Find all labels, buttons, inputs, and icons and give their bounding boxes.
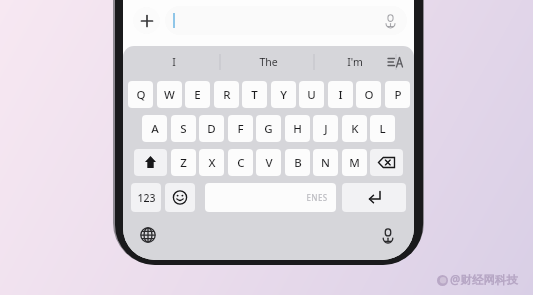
button[interactable]: Shift — [134, 149, 167, 176]
staticText: W — [164, 87, 175, 103]
staticText: A — [151, 121, 159, 137]
staticText: G — [264, 121, 273, 137]
button[interactable]: O — [356, 81, 381, 108]
staticText: H — [293, 121, 302, 137]
button[interactable]: Change keyboard language — [137, 224, 159, 246]
staticText: ENES — [306, 192, 328, 203]
button[interactable]: H — [285, 115, 310, 142]
staticText: U — [307, 87, 316, 103]
button[interactable]: C — [228, 149, 253, 176]
button[interactable]: 123 — [131, 183, 161, 212]
button[interactable]: Space — [205, 183, 336, 212]
staticText: D — [207, 121, 216, 137]
staticText: Y — [280, 87, 287, 103]
button[interactable]: E — [185, 81, 210, 108]
button[interactable]: Text formatting — [378, 51, 412, 73]
button[interactable]: I — [127, 51, 221, 73]
button[interactable]: S — [171, 115, 196, 142]
button[interactable]: X — [199, 149, 224, 176]
staticText: T — [251, 87, 258, 103]
button[interactable]: F — [228, 115, 253, 142]
button[interactable]: Enter — [342, 183, 406, 212]
staticText: R — [223, 87, 231, 103]
staticText: @财经网科技 — [450, 272, 518, 288]
button[interactable]: Emoji — [165, 183, 195, 212]
staticText: K — [351, 121, 359, 137]
button[interactable]: P — [385, 81, 410, 108]
staticText: P — [394, 87, 402, 103]
button[interactable]: N — [313, 149, 338, 176]
button[interactable]: J — [313, 115, 338, 142]
staticText: E — [194, 87, 201, 103]
button[interactable]: I — [328, 81, 353, 108]
button[interactable]: Dictate — [377, 224, 399, 246]
button[interactable]: T — [242, 81, 267, 108]
staticText: M — [349, 155, 360, 171]
staticText: L — [379, 121, 386, 137]
button[interactable]: B — [285, 149, 310, 176]
button[interactable]: U — [299, 81, 324, 108]
button[interactable]: The — [221, 51, 315, 73]
button[interactable]: A — [142, 115, 167, 142]
staticText: Q — [136, 87, 146, 103]
button[interactable]: W — [157, 81, 182, 108]
button[interactable]: Backspace — [370, 149, 403, 176]
staticText: F — [237, 121, 244, 137]
button[interactable]: Z — [171, 149, 196, 176]
button[interactable]: R — [214, 81, 239, 108]
button[interactable]: D — [199, 115, 224, 142]
button[interactable]: L — [370, 115, 395, 142]
staticText: O — [364, 87, 374, 103]
button[interactable]: Voice input — [383, 13, 398, 28]
staticText: 123 — [137, 191, 156, 205]
staticText: V — [265, 155, 273, 171]
staticText: I'm — [347, 55, 363, 69]
staticText: The — [259, 55, 278, 69]
staticText: N — [321, 155, 330, 171]
staticText: B — [294, 155, 302, 171]
button[interactable]: G — [256, 115, 281, 142]
button[interactable]: K — [342, 115, 367, 142]
button[interactable]: M — [342, 149, 367, 176]
button[interactable]: V — [256, 149, 281, 176]
staticText: X — [208, 155, 216, 171]
button[interactable]: Voice input — [165, 6, 407, 35]
button[interactable]: I'm — [315, 51, 395, 73]
staticText: S — [180, 121, 187, 137]
staticText: C — [237, 155, 245, 171]
staticText: J — [324, 121, 328, 137]
button[interactable]: Y — [271, 81, 296, 108]
staticText: I — [338, 87, 343, 103]
staticText: Z — [180, 155, 187, 171]
button[interactable]: Add attachment — [133, 7, 160, 34]
staticText: I — [172, 55, 176, 69]
button[interactable]: Q — [128, 81, 153, 108]
